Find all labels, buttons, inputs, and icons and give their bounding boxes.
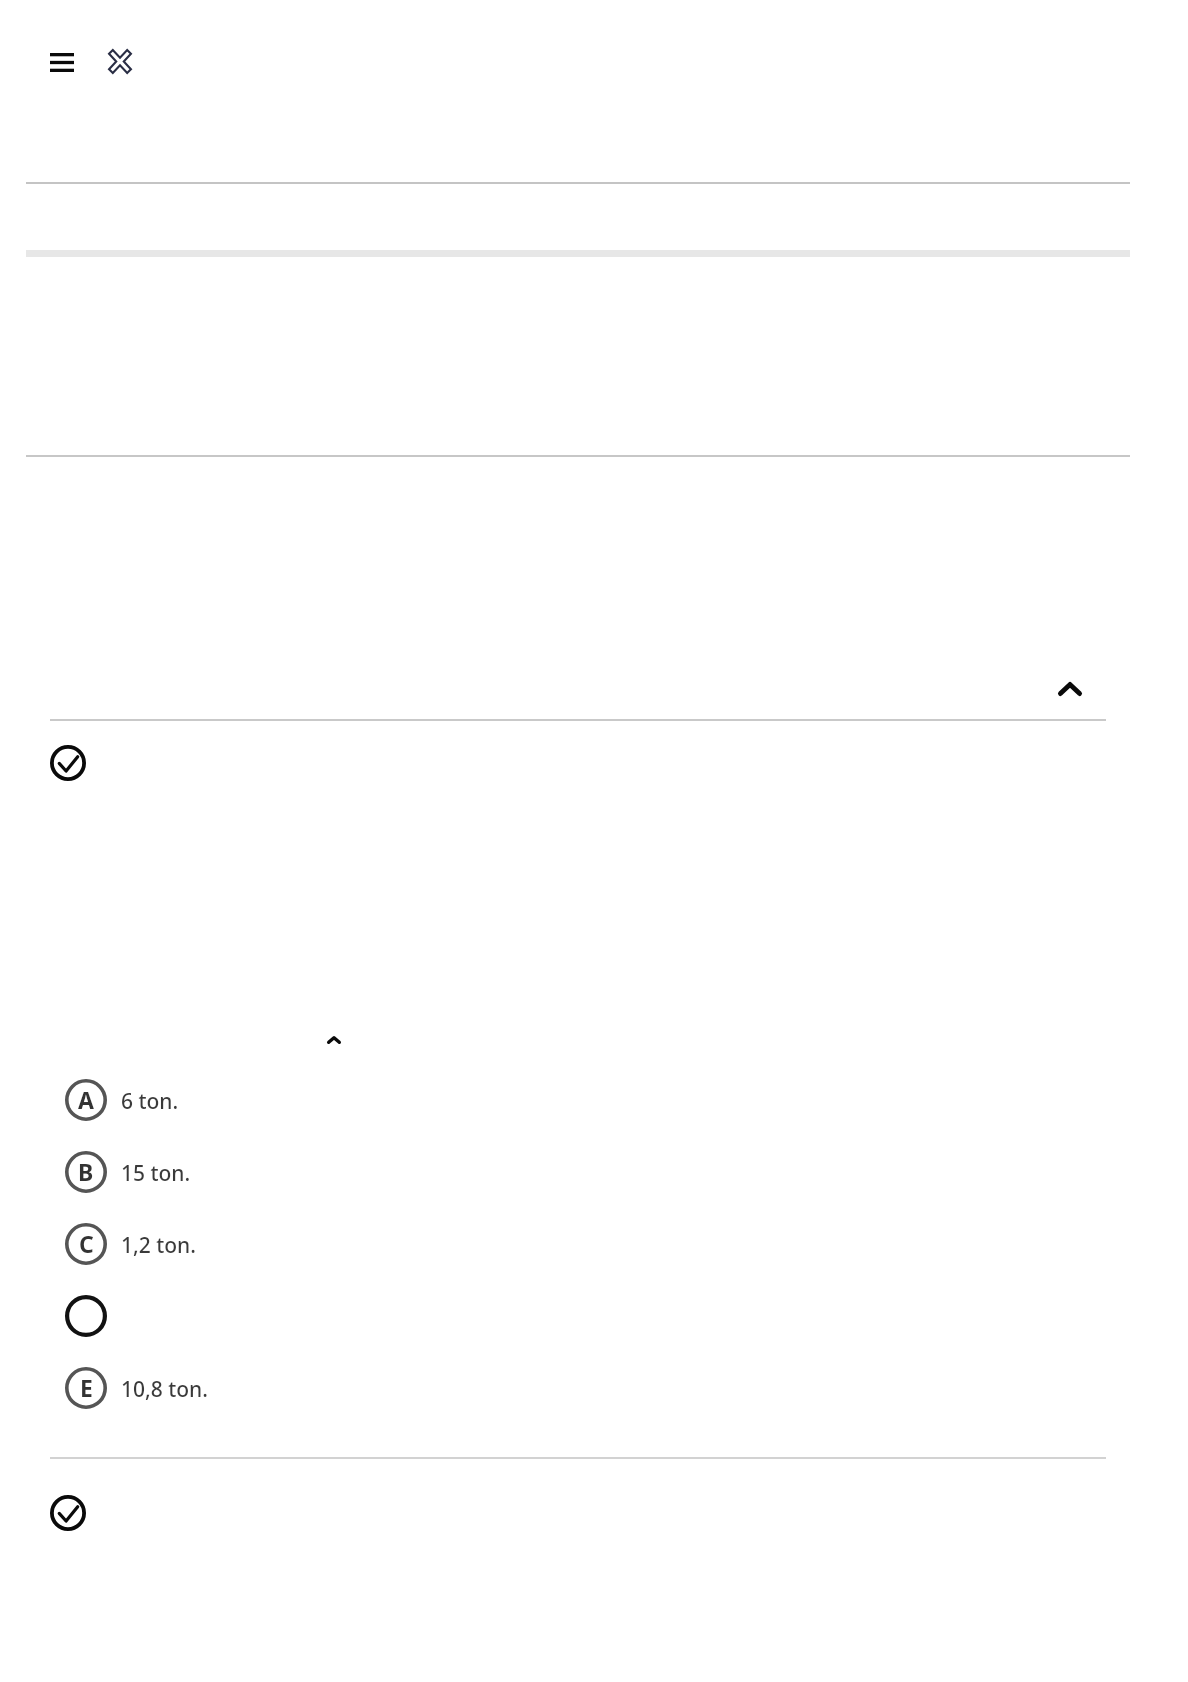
staticText: 15 ton. <box>121 1159 191 1188</box>
button[interactable]: Close <box>98 39 142 83</box>
button[interactable]: Option D <box>65 1295 1106 1337</box>
button[interactable]: Option A 6 ton. <box>65 1079 1106 1121</box>
staticText: E <box>80 1372 93 1403</box>
button[interactable]: Correct answer <box>50 745 86 781</box>
staticText: 6 ton. <box>121 1087 179 1116</box>
staticText: A <box>78 1084 94 1115</box>
staticText: C <box>79 1228 94 1259</box>
button[interactable]: Menu <box>40 40 84 84</box>
button[interactable]: Option B 15 ton. <box>65 1151 1106 1193</box>
button[interactable]: Correct answer <box>50 1495 86 1531</box>
button[interactable]: Collapse <box>1044 668 1096 710</box>
button[interactable]: Option E 10,8 ton. <box>65 1367 1106 1409</box>
staticText: 1,2 ton. <box>121 1231 196 1260</box>
staticText: 10,8 ton. <box>121 1375 208 1404</box>
staticText: B <box>78 1156 94 1187</box>
button[interactable]: Collapse section <box>313 1022 355 1058</box>
button[interactable]: Option C 1,2 ton. <box>65 1223 1106 1265</box>
